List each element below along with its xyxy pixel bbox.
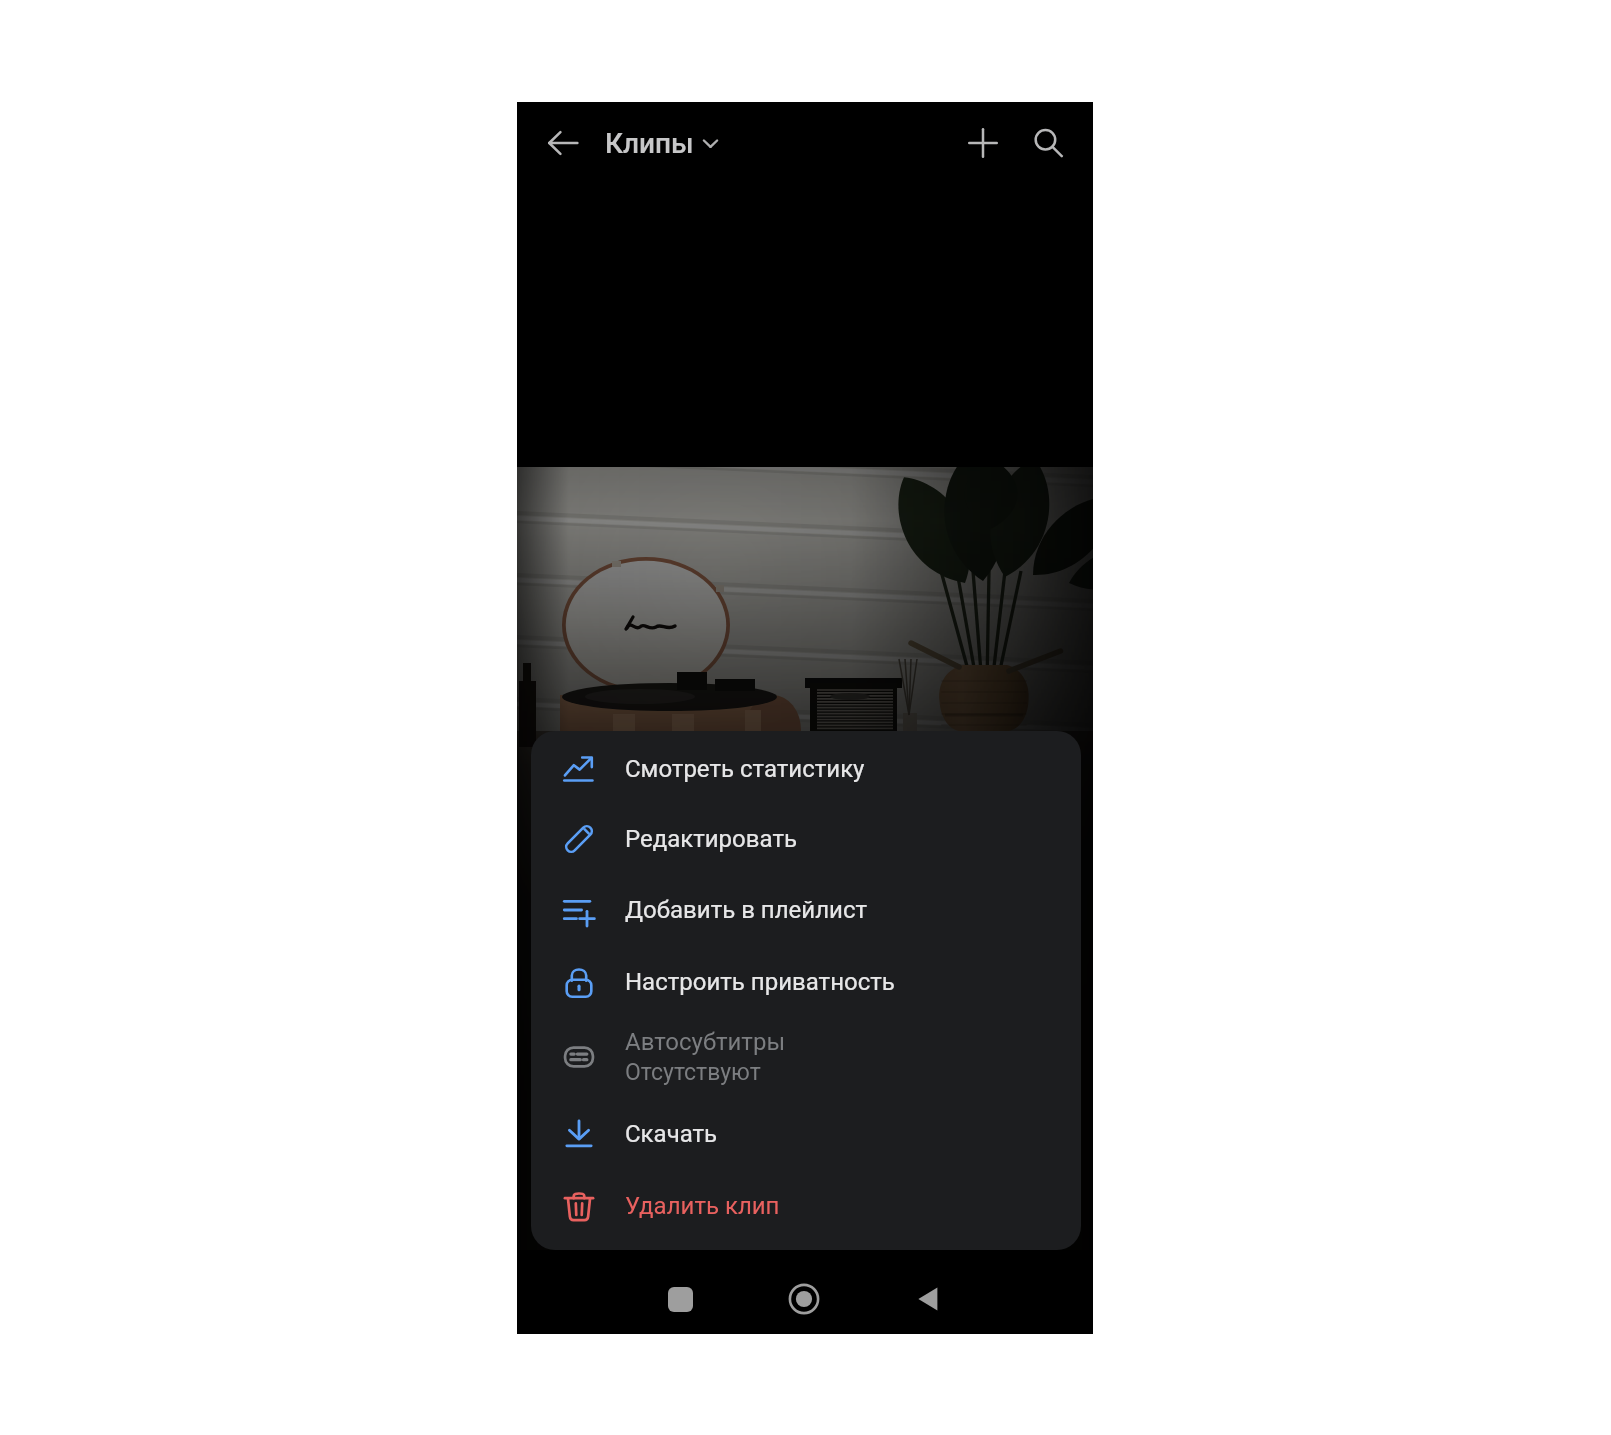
button[interactable]: Search [1024,119,1072,167]
button[interactable]: Home [773,1268,835,1330]
button[interactable]: Back [898,1268,960,1330]
button[interactable]: Recent apps [649,1268,711,1330]
staticText: Добавить в плейлист [625,896,867,924]
button[interactable]: Скачать [531,1096,1081,1171]
button[interactable]: Back [539,119,587,167]
staticText: Отсутствуют [625,1059,761,1086]
button[interactable]: Добавить в плейлист [531,874,1081,945]
button[interactable]: Смотреть статистику [531,734,1081,804]
button[interactable]: Автосубтитры [531,1018,1081,1096]
staticText: Удалить клип [625,1192,780,1220]
button[interactable]: Удалить клип [531,1171,1081,1241]
button[interactable]: Редактировать [531,804,1081,874]
staticText: Автосубтитры [625,1028,786,1056]
staticText: Смотреть статистику [625,755,865,783]
button[interactable]: Настроить приватность [531,945,1081,1018]
button[interactable]: Клипы [605,115,718,171]
staticText: Настроить приватность [625,968,895,996]
staticText: Скачать [625,1120,718,1148]
button[interactable]: Add clip [959,119,1007,167]
staticText: Клипы [605,127,694,160]
staticText: Редактировать [625,825,797,853]
